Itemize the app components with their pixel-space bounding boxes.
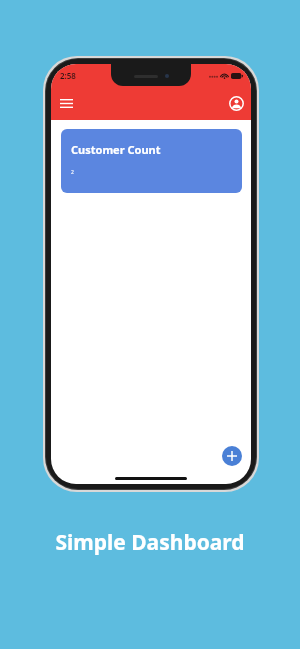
staticText: 2:58 bbox=[60, 70, 76, 81]
button[interactable]: Open navigation menu bbox=[55, 92, 77, 114]
button[interactable]: Customer Count bbox=[61, 129, 242, 193]
staticText: Simple Dashboard bbox=[0, 528, 300, 557]
staticText: 2 bbox=[71, 169, 74, 176]
button[interactable]: Add bbox=[222, 446, 242, 466]
staticText: Customer Count bbox=[71, 142, 161, 157]
button[interactable]: Account bbox=[225, 92, 247, 114]
